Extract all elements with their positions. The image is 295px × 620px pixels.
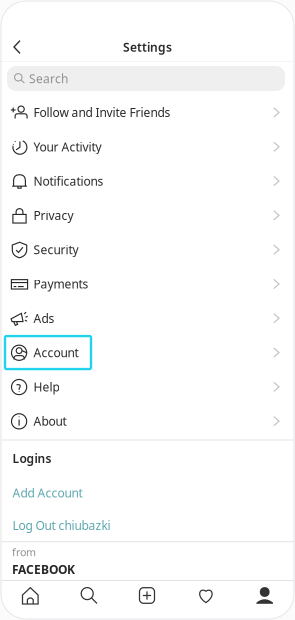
button[interactable]: Security <box>1 232 294 267</box>
button[interactable]: Activity <box>177 581 235 619</box>
staticText: Privacy <box>33 207 73 223</box>
staticText: Security <box>33 242 78 258</box>
staticText: About <box>33 413 66 429</box>
staticText: from <box>12 545 36 559</box>
button[interactable]: Search <box>60 581 118 619</box>
staticText: Follow and Invite Friends <box>33 104 170 120</box>
button[interactable]: New Post <box>118 581 177 619</box>
button[interactable]: About <box>1 404 294 438</box>
button[interactable]: Privacy <box>1 198 294 232</box>
staticText: Add Account <box>12 485 82 501</box>
staticText: Account <box>33 345 78 360</box>
button[interactable]: Your Activity <box>1 130 294 164</box>
staticText: Search <box>29 70 68 86</box>
staticText: Help <box>33 379 59 395</box>
staticText: Settings <box>123 39 172 55</box>
button[interactable]: Account <box>1 335 294 370</box>
button[interactable]: Follow and Invite Friends <box>1 95 294 130</box>
staticText: Notifications <box>33 173 103 189</box>
staticText: Logins <box>12 450 51 466</box>
button[interactable]: Log Out chiubazki <box>1 509 294 541</box>
button[interactable]: Home <box>1 581 60 619</box>
button[interactable]: Payments <box>1 267 294 301</box>
button[interactable]: Search <box>1 66 294 95</box>
button[interactable]: Back <box>1 30 35 64</box>
staticText: Log Out chiubazki <box>12 517 110 533</box>
button[interactable]: Notifications <box>1 164 294 198</box>
staticText: Ads <box>33 310 54 326</box>
staticText: Payments <box>33 276 88 292</box>
staticText: FACEBOOK <box>12 561 75 577</box>
button[interactable]: Profile <box>235 581 294 619</box>
staticText: Your Activity <box>33 139 101 155</box>
button[interactable]: Help <box>1 370 294 404</box>
button[interactable]: Add Account <box>1 476 294 509</box>
button[interactable]: Ads <box>1 301 294 335</box>
